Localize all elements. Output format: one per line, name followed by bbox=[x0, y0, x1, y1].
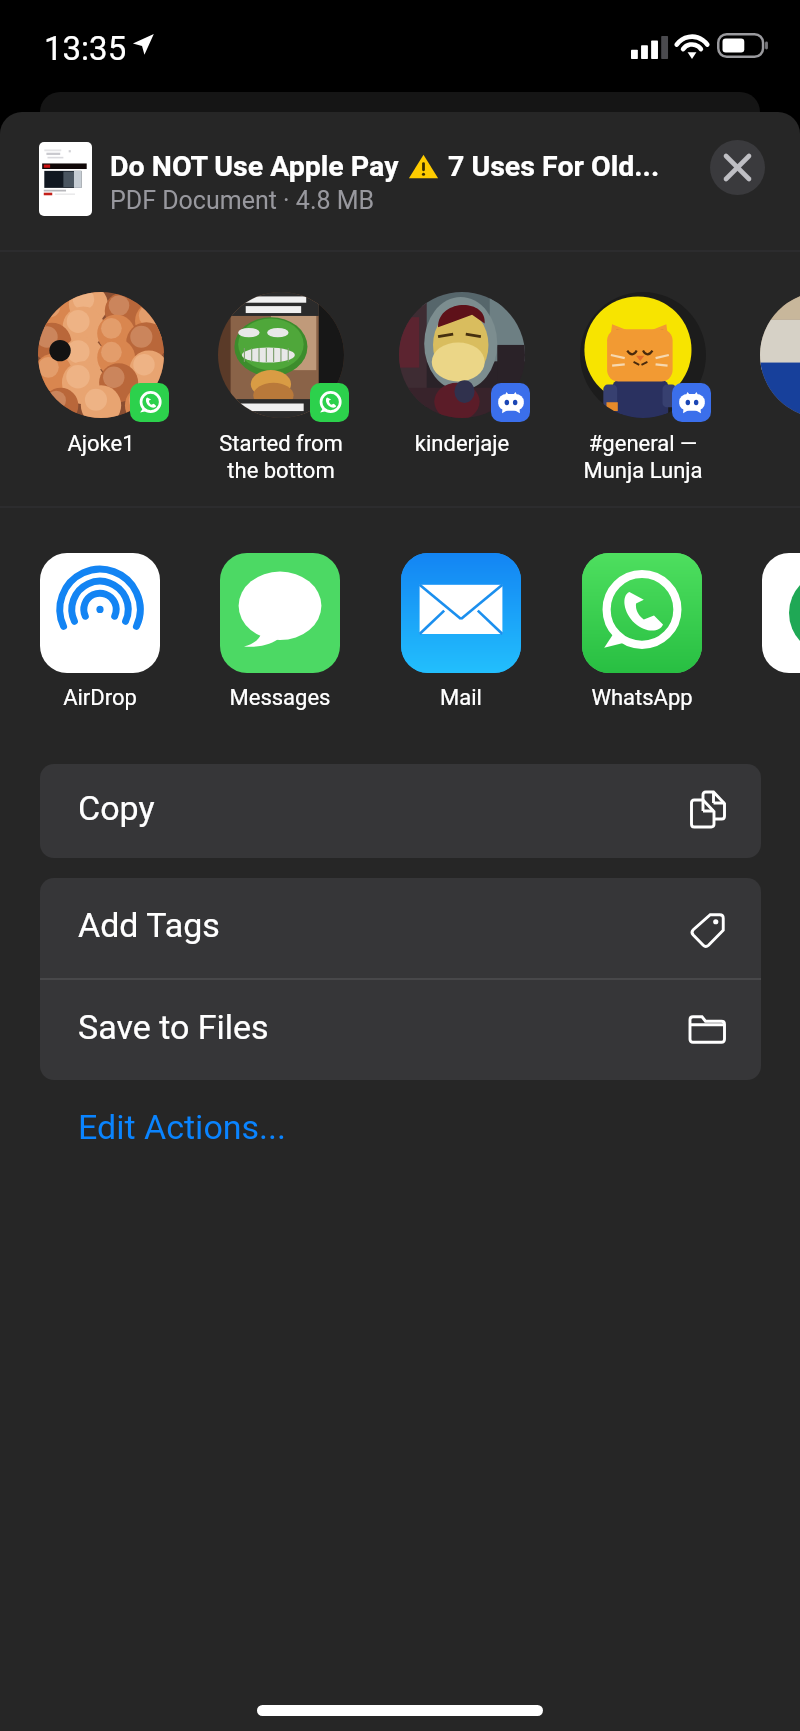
button[interactable]: Add Tags bbox=[40, 878, 761, 978]
button[interactable]: AirDrop bbox=[10, 545, 190, 720]
staticText: Do NOT Use Apple Pay bbox=[110, 150, 399, 183]
button[interactable]: WhatsApp bbox=[552, 545, 732, 720]
button[interactable]: Copy bbox=[40, 764, 761, 858]
button[interactable]: #general — Munja Lunja bbox=[553, 280, 733, 495]
staticText: kinderjaje bbox=[372, 431, 552, 457]
button[interactable]: Ajoke1 bbox=[11, 280, 191, 495]
button[interactable]: Started from the bottom bbox=[191, 280, 371, 495]
staticText: 13:35 bbox=[44, 29, 127, 68]
button[interactable]: Save to Files bbox=[40, 980, 761, 1080]
button[interactable]: Messages bbox=[190, 545, 370, 720]
button[interactable]: kinderjaje bbox=[372, 280, 552, 495]
staticText: Add Tags bbox=[78, 905, 220, 945]
staticText: Save to Files bbox=[78, 1007, 269, 1047]
staticText: Ajoke1 bbox=[11, 431, 191, 457]
button[interactable]: Close bbox=[710, 140, 765, 195]
staticText: Mail bbox=[371, 685, 551, 711]
staticText: Messages bbox=[190, 685, 370, 711]
staticText: PDF Document · 4.8 MB bbox=[110, 186, 375, 215]
button[interactable]: C bbox=[732, 545, 800, 720]
staticText: AirDrop bbox=[10, 685, 190, 711]
staticText: #general — Munja Lunja bbox=[553, 431, 733, 484]
staticText: WhatsApp bbox=[552, 685, 732, 711]
staticText: Edit Actions... bbox=[78, 1107, 286, 1147]
staticText: Copy bbox=[78, 788, 155, 828]
button[interactable]: B bbox=[733, 280, 800, 495]
staticText: Started from the bottom bbox=[191, 431, 371, 484]
button[interactable]: Mail bbox=[371, 545, 551, 720]
button[interactable]: Edit Actions... bbox=[40, 1098, 440, 1162]
staticText: 7 Uses For Old... bbox=[448, 150, 660, 183]
